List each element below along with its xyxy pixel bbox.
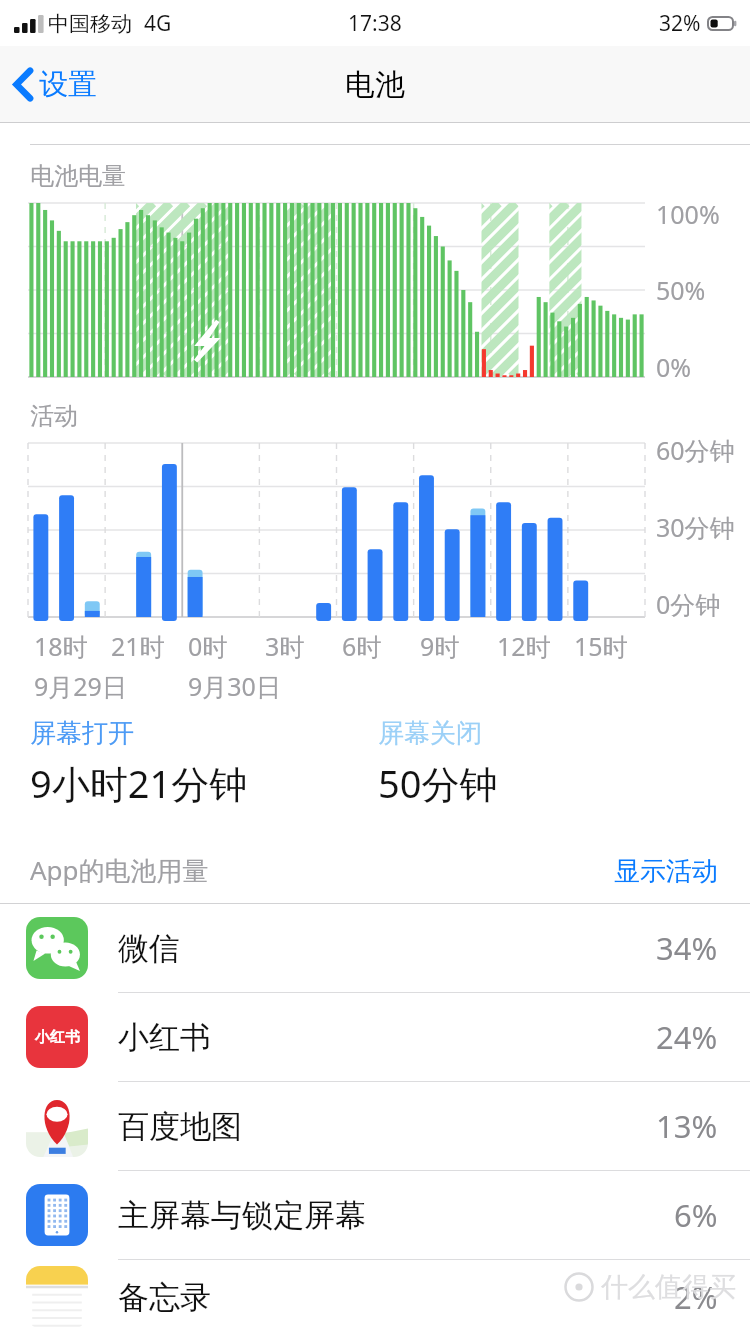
staticText: 电池 [345,66,405,104]
staticText: 6时 [342,629,382,663]
button[interactable]: 显示活动 [582,849,750,891]
staticText: 15时 [574,629,628,663]
staticText: 百度地图 [118,1107,242,1146]
staticText: 9时 [420,629,460,663]
button[interactable]: 小红书 [0,993,750,1081]
staticText: 屏幕关闭 [378,717,482,750]
button[interactable]: 返回设置 [0,56,113,113]
staticText: 主屏幕与锁定屏幕 [118,1196,366,1235]
staticText: 9小时21分钟 [30,757,248,809]
staticText: 小红书 [118,1018,211,1057]
staticText: 3时 [265,629,305,663]
staticText: 微信 [118,929,180,968]
staticText: 0分钟 [656,587,721,621]
staticText: 30分钟 [656,510,735,544]
staticText: 备忘录 [118,1278,211,1317]
staticText: 60分钟 [656,433,735,467]
staticText: 2% [674,1276,718,1318]
staticText: 0% [656,350,692,384]
staticText: 什么值得买 [601,1270,736,1304]
staticText: 显示活动 [614,855,718,885]
staticText: App的电池用量 [30,852,209,888]
staticText: 32% [659,9,701,38]
staticText: 17:38 [348,9,402,38]
staticText: 小红书 [35,1028,80,1047]
button[interactable]: 主屏幕与锁定屏幕 [0,1171,750,1259]
staticText: 活动 [30,401,78,431]
staticText: 屏幕打开 [30,717,134,750]
staticText: 13% [656,1105,718,1147]
staticText: 21时 [111,629,165,663]
staticText: 50分钟 [378,757,498,809]
staticText: 6% [674,1194,718,1236]
staticText: 50% [656,273,706,307]
staticText: 中国移动 [48,11,132,37]
other: 返回设置 [14,68,33,101]
staticText: 100% [656,197,720,231]
staticText: 24% [656,1016,718,1058]
staticText: 9月29日 [34,669,127,703]
staticText: 设置 [39,66,97,103]
staticText: 12时 [497,629,551,663]
staticText: 9月30日 [188,669,281,703]
button[interactable]: 微信 [0,904,750,992]
staticText: 18时 [34,629,88,663]
staticText: 0时 [188,629,228,663]
staticText: 34% [656,927,718,969]
button[interactable]: 百度地图 [0,1082,750,1170]
button[interactable]: 备忘录 [0,1260,750,1334]
staticText: 电池电量 [30,161,126,191]
staticText: 4G [144,9,172,38]
